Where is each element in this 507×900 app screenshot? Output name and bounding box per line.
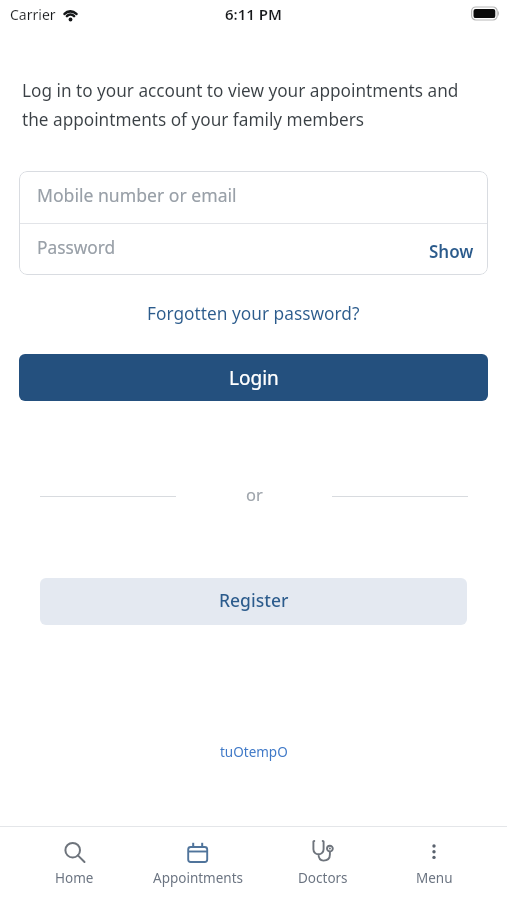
staticText: Show [429, 240, 474, 263]
staticText: tuOtempO [220, 743, 288, 761]
button[interactable]: Appointments [135, 827, 261, 900]
button[interactable]: Password [19, 224, 488, 275]
staticText: Mobile number or email [37, 183, 237, 207]
staticText: Menu [416, 869, 453, 887]
button[interactable]: Forgotten your password? [147, 302, 360, 326]
button[interactable]: tuOtempO [0, 743, 507, 761]
button[interactable]: Login [19, 354, 488, 401]
staticText: Password [37, 236, 116, 260]
staticText: Login [229, 365, 279, 391]
button[interactable]: Register [40, 578, 467, 625]
staticText: Doctors [298, 869, 348, 887]
button[interactable]: Doctors [268, 827, 378, 900]
staticText: Register [219, 588, 289, 612]
staticText: Forgotten your password? [147, 302, 360, 326]
button[interactable]: Mobile number or email [19, 171, 488, 223]
staticText: 6:11 PM [225, 4, 282, 24]
staticText: Home [55, 869, 94, 887]
button[interactable]: Show [429, 238, 488, 261]
staticText: Log in to your account to view your appo… [22, 79, 459, 131]
staticText: Appointments [153, 869, 244, 887]
button[interactable]: Home [19, 827, 129, 900]
staticText: or [246, 483, 263, 503]
button[interactable]: Menu [379, 827, 489, 900]
staticText: Carrier [10, 5, 56, 24]
